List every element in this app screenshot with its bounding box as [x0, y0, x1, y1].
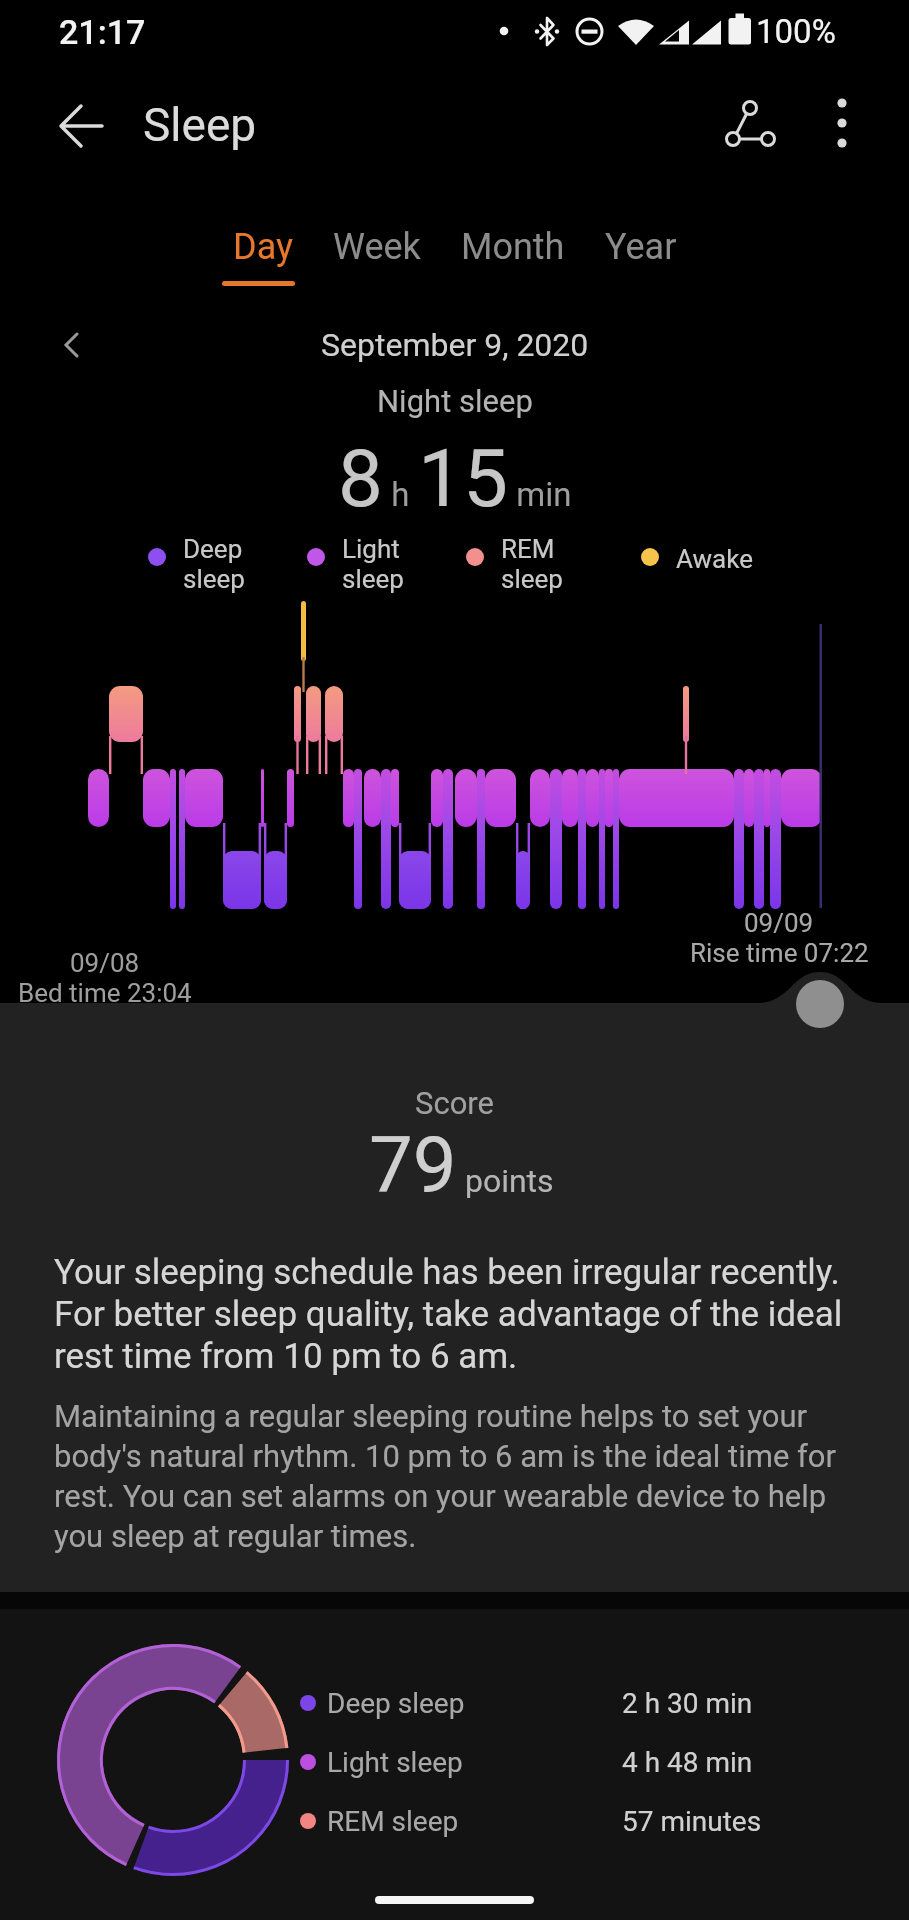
staticText: Light sleep — [342, 534, 404, 594]
button[interactable]: Month — [461, 226, 565, 268]
button[interactable] — [790, 975, 850, 1035]
staticText: 57 minutes — [622, 1805, 762, 1838]
staticText: Day — [233, 226, 293, 268]
staticText: Your sleeping schedule has been irregula… — [54, 1252, 843, 1377]
button[interactable] — [814, 98, 870, 154]
staticText: min — [508, 475, 572, 514]
staticText: Sleep — [143, 98, 257, 152]
button[interactable] — [40, 96, 104, 160]
button[interactable]: Day — [233, 226, 293, 268]
button[interactable] — [50, 325, 94, 369]
staticText: 2 h 30 min — [622, 1687, 753, 1720]
staticText: Awake — [676, 544, 753, 574]
staticText: Rise time 07:22 — [690, 938, 869, 968]
staticText: 15 — [418, 432, 508, 526]
staticText: 21:17 — [59, 12, 146, 52]
staticText: Night sleep — [377, 383, 533, 419]
staticText: 09/08 — [70, 948, 140, 978]
staticText: REM sleep — [327, 1805, 459, 1838]
staticText: Score — [415, 1085, 494, 1121]
button[interactable]: Week — [333, 226, 421, 268]
staticText: Year — [605, 226, 677, 268]
staticText: Maintaining a regular sleeping routine h… — [54, 1398, 837, 1554]
staticText: h — [383, 475, 418, 514]
staticText: 09/09 — [744, 908, 814, 938]
staticText: 100% — [756, 12, 836, 51]
staticText: Month — [461, 226, 565, 268]
staticText: Week — [333, 226, 421, 268]
staticText: Light sleep — [327, 1746, 463, 1779]
button[interactable]: Year — [605, 226, 677, 268]
staticText: Bed time 23:04 — [18, 978, 192, 1008]
staticText: REM sleep — [501, 534, 563, 594]
staticText: 79 — [369, 1120, 457, 1211]
button[interactable] — [710, 98, 770, 158]
staticText: 8 — [338, 432, 383, 526]
staticText: September 9, 2020 — [321, 326, 589, 364]
staticText: points — [457, 1162, 554, 1200]
staticText: Deep sleep — [327, 1687, 465, 1720]
staticText: 4 h 48 min — [622, 1746, 753, 1779]
staticText: Deep sleep — [183, 534, 245, 594]
